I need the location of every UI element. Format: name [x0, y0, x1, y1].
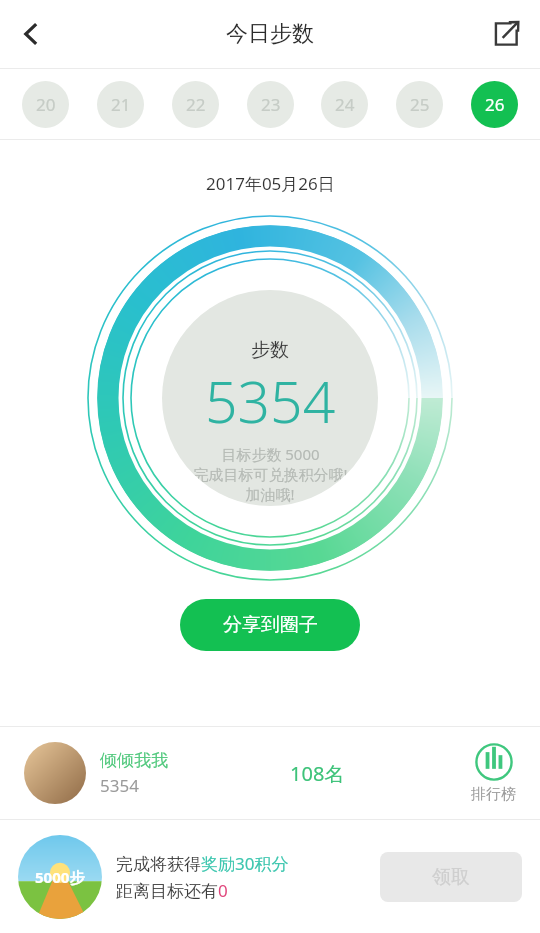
button[interactable]: 分享到圈子	[180, 599, 360, 651]
staticText: 完成目标可兑换积分哦!	[193, 464, 348, 484]
staticText: 目标步数 5000	[221, 444, 320, 464]
button[interactable]: 23	[247, 81, 294, 128]
button[interactable]: 21	[97, 81, 144, 128]
staticText: 20	[36, 93, 56, 116]
staticText: 完成将获得奖励30积分	[116, 852, 289, 875]
staticText: 5000步	[35, 867, 85, 887]
staticText: 步数	[251, 338, 289, 362]
staticText: 22	[186, 93, 206, 116]
staticText: 23	[261, 93, 281, 116]
button[interactable]: 20	[22, 81, 69, 128]
staticText: 5354	[100, 774, 139, 797]
button[interactable]: Share	[480, 8, 532, 60]
button[interactable]: 22	[172, 81, 219, 128]
staticText: 24	[335, 93, 355, 116]
staticText: 今日步数	[226, 20, 314, 48]
button[interactable]: 25	[396, 81, 443, 128]
staticText: 距离目标还有0	[116, 879, 228, 902]
staticText: 倾倾我我	[100, 750, 168, 771]
staticText: 108名	[290, 760, 345, 787]
staticText: 5354	[205, 362, 336, 440]
staticText: 加油哦!	[245, 484, 295, 504]
staticText: 26	[485, 93, 505, 116]
button[interactable]: 排行榜	[467, 743, 520, 804]
button[interactable]: 倾倾我我	[0, 727, 540, 819]
button[interactable]: Back	[6, 8, 58, 60]
staticText: 25	[410, 93, 430, 116]
staticText: 21	[111, 93, 131, 116]
staticText: 领取	[432, 865, 470, 889]
button[interactable]: 领取	[380, 852, 522, 902]
staticText: 分享到圈子	[223, 613, 318, 637]
staticText: 2017年05月26日	[206, 172, 335, 195]
button[interactable]: 26	[471, 81, 518, 128]
staticText: 排行榜	[471, 785, 516, 804]
button[interactable]: 24	[321, 81, 368, 128]
